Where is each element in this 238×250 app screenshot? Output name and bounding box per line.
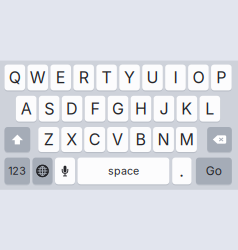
- button[interactable]: Z: [38, 126, 59, 153]
- button[interactable]: P: [211, 64, 232, 91]
- button[interactable]: Y: [119, 64, 140, 91]
- button[interactable]: D: [62, 95, 82, 123]
- staticText: F: [90, 99, 99, 118]
- button[interactable]: E: [50, 64, 71, 91]
- staticText: .: [179, 161, 184, 181]
- button[interactable]: M: [176, 126, 197, 153]
- button[interactable]: Dictation: [55, 157, 75, 185]
- button[interactable]: Shift: [4, 126, 30, 153]
- button[interactable]: Next keyboard: [32, 157, 52, 185]
- button[interactable]: B: [130, 126, 151, 153]
- button[interactable]: O: [188, 64, 209, 91]
- staticText: U: [146, 68, 158, 87]
- button[interactable]: I: [165, 64, 186, 91]
- button[interactable]: L: [199, 95, 220, 123]
- button[interactable]: F: [85, 95, 105, 123]
- staticText: X: [66, 130, 77, 149]
- button[interactable]: W: [27, 64, 48, 91]
- staticText: Go: [206, 164, 222, 178]
- staticText: O: [192, 68, 204, 87]
- staticText: M: [179, 130, 193, 149]
- staticText: D: [66, 99, 78, 118]
- button[interactable]: Q: [4, 64, 25, 91]
- button[interactable]: Period: [172, 157, 191, 185]
- button[interactable]: V: [107, 126, 128, 153]
- button[interactable]: X: [61, 126, 82, 153]
- staticText: space: [108, 164, 139, 177]
- button[interactable]: Delete: [207, 126, 232, 153]
- button[interactable]: J: [154, 95, 174, 123]
- button[interactable]: S: [39, 95, 59, 123]
- staticText: B: [135, 130, 145, 149]
- button[interactable]: space: [77, 157, 169, 185]
- staticText: J: [159, 99, 168, 118]
- button[interactable]: K: [177, 95, 197, 123]
- staticText: K: [181, 99, 192, 118]
- button[interactable]: R: [73, 64, 94, 91]
- staticText: A: [21, 99, 32, 118]
- staticText: N: [157, 130, 169, 149]
- staticText: C: [89, 130, 101, 149]
- staticText: Y: [124, 68, 135, 87]
- staticText: H: [135, 99, 147, 118]
- button[interactable]: N: [153, 126, 174, 153]
- button[interactable]: T: [96, 64, 117, 91]
- button[interactable]: U: [142, 64, 163, 91]
- staticText: P: [216, 68, 226, 87]
- staticText: G: [112, 99, 124, 118]
- staticText: I: [173, 68, 177, 87]
- staticText: W: [30, 68, 46, 87]
- staticText: Q: [9, 68, 21, 87]
- button[interactable]: A: [16, 95, 36, 123]
- staticText: 123: [8, 164, 26, 177]
- staticText: T: [102, 68, 112, 87]
- staticText: R: [79, 68, 89, 87]
- staticText: Z: [44, 130, 54, 149]
- staticText: V: [112, 130, 123, 149]
- button[interactable]: H: [131, 95, 151, 123]
- button[interactable]: G: [108, 95, 128, 123]
- staticText: S: [44, 99, 54, 118]
- staticText: E: [56, 68, 66, 87]
- button[interactable]: Go: [196, 157, 232, 185]
- staticText: L: [205, 99, 214, 118]
- button[interactable]: C: [84, 126, 105, 153]
- button[interactable]: Numbers: [4, 157, 30, 185]
